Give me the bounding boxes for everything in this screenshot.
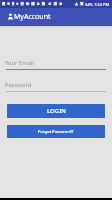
staticText: MyAccount	[14, 12, 51, 22]
staticText: LOGIN	[47, 107, 66, 115]
button[interactable]: LOGIN	[7, 104, 105, 118]
staticText: 54%	[85, 2, 93, 7]
staticText: Forgot Password?	[38, 129, 74, 135]
staticText: 7:24 PM	[94, 2, 110, 7]
button[interactable]: Forgot Password?	[7, 125, 105, 138]
other: Account	[8, 13, 13, 20]
staticText: Password	[5, 81, 32, 89]
staticText: Your Email	[5, 59, 34, 67]
